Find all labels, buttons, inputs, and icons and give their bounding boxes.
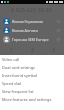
staticText: 8 925 625 78 90	[11, 7, 53, 14]
staticText: Вызов Англия	[12, 28, 55, 33]
button[interactable]: Video call	[0, 55, 64, 63]
button[interactable]: More features and settings	[0, 95, 64, 103]
button[interactable]: Call details	[55, 36, 62, 43]
staticText: Dual card settings	[2, 65, 35, 70]
staticText: Insert/send symbol	[2, 73, 38, 78]
staticText: 3	[52, 47, 55, 54]
staticText: Горячая SIM Europe	[12, 37, 55, 42]
staticText: Speed dial	[2, 81, 21, 86]
staticText: More features and settings	[2, 97, 52, 102]
button[interactable]: Горячая SIM Europe	[0, 35, 64, 44]
staticText: 1	[10, 47, 13, 54]
button[interactable]: Speed dial	[0, 79, 64, 87]
button[interactable]: Insert/send symbol	[0, 71, 64, 79]
button[interactable]: Call details	[55, 27, 62, 34]
button[interactable]: Вызов Англия	[0, 26, 64, 35]
staticText: View frequent list	[2, 89, 34, 94]
button[interactable]: Вызов Германия	[0, 17, 64, 26]
staticText: Video call	[2, 57, 20, 62]
button[interactable]: Call details	[55, 18, 62, 25]
button[interactable]: Dual card settings	[0, 63, 64, 71]
staticText: Вызов Германия	[12, 19, 55, 24]
button[interactable]: View frequent list	[0, 87, 64, 95]
staticText: 2	[31, 47, 34, 54]
